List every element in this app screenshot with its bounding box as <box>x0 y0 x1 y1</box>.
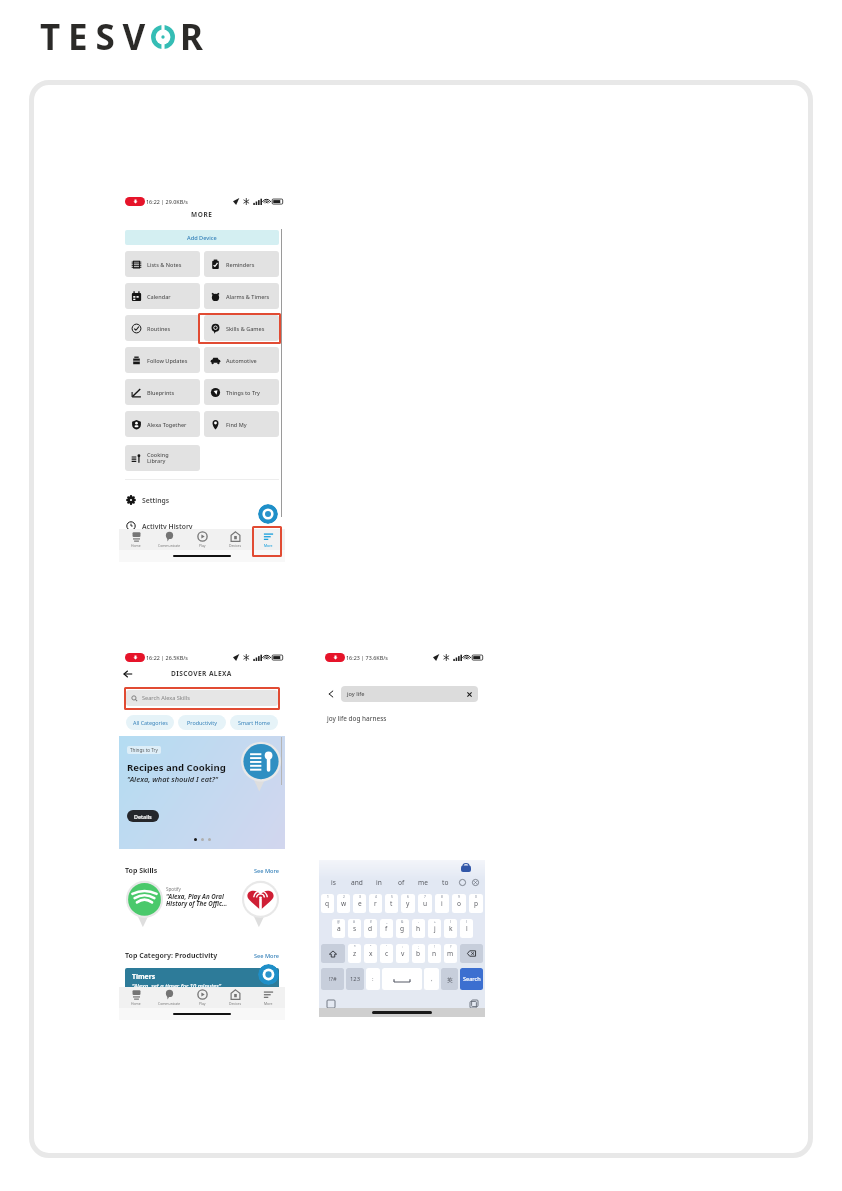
button[interactable]: Things to Try <box>204 379 279 405</box>
button[interactable]: Back <box>119 666 137 681</box>
button[interactable]: Blueprints <box>125 379 200 405</box>
button[interactable]: y <box>401 894 415 913</box>
staticText: More <box>264 1001 273 1006</box>
button[interactable]: v <box>396 944 409 963</box>
button[interactable]: a <box>332 919 345 938</box>
button[interactable]: Skills & Games <box>204 315 279 341</box>
button[interactable]: m <box>444 944 457 963</box>
button[interactable]: o <box>452 894 466 913</box>
button[interactable]: Timers <box>125 968 279 992</box>
button[interactable]: f <box>380 919 393 938</box>
button[interactable]: Activity History <box>119 516 285 536</box>
button[interactable]: Search Alexa Skills <box>126 690 278 706</box>
button[interactable]: : <box>366 968 380 990</box>
staticText: Follow Updates <box>147 357 188 364</box>
button[interactable]: Space <box>382 968 422 990</box>
button[interactable]: 123 <box>346 968 364 990</box>
staticText: Lists & Notes <box>147 261 182 268</box>
button[interactable]: 英 <box>441 968 458 990</box>
button[interactable]: Find My <box>204 411 279 437</box>
button[interactable]: w <box>337 894 350 913</box>
button[interactable]: in <box>368 876 390 889</box>
button[interactable]: Automotive <box>204 347 279 373</box>
button[interactable]: e <box>353 894 366 913</box>
staticText: : <box>372 975 374 983</box>
button[interactable]: Cooking Library <box>125 445 200 471</box>
button[interactable]: Shift <box>321 944 345 963</box>
button[interactable]: Productivity <box>178 715 226 730</box>
button[interactable]: More <box>252 987 285 1008</box>
button[interactable]: of <box>390 876 412 889</box>
staticText: _ <box>386 920 388 924</box>
button[interactable]: g <box>396 919 409 938</box>
button[interactable]: t <box>385 894 398 913</box>
button[interactable]: Reminders <box>204 251 279 277</box>
button[interactable]: Details <box>127 810 159 822</box>
button[interactable]: d <box>364 919 377 938</box>
button[interactable]: Routines <box>125 315 200 341</box>
button[interactable]: n <box>428 944 441 963</box>
button[interactable]: Home <box>119 987 153 1008</box>
button[interactable]: Home <box>119 529 153 550</box>
button[interactable]: Communicate <box>153 529 186 550</box>
button[interactable]: All Categories <box>126 715 174 730</box>
staticText: Routines <box>147 325 171 332</box>
button[interactable]: Devices <box>219 529 252 550</box>
button[interactable]: Follow Updates <box>125 347 200 373</box>
button[interactable]: !?# <box>321 968 344 990</box>
button[interactable]: Close suggestions <box>469 876 482 889</box>
button[interactable]: q <box>321 894 334 913</box>
button[interactable]: is <box>322 876 345 889</box>
button[interactable]: Backspace <box>460 944 483 963</box>
button[interactable]: r <box>369 894 382 913</box>
button[interactable]: and <box>345 876 368 889</box>
staticText: See More <box>254 867 279 875</box>
staticText: joy life dog harness <box>327 714 387 723</box>
staticText: Communicate <box>158 1001 181 1006</box>
button[interactable]: Alexa <box>258 964 279 985</box>
staticText: 16:22 | 29.0KB/s <box>146 198 188 205</box>
button[interactable]: Play <box>186 987 219 1008</box>
button[interactable]: l <box>460 919 473 938</box>
button[interactable]: b <box>412 944 425 963</box>
button[interactable]: joy life <box>341 686 478 702</box>
button[interactable]: Alexa <box>258 504 278 524</box>
button[interactable]: Lists & Notes <box>125 251 200 277</box>
button[interactable]: See More <box>254 952 279 960</box>
button[interactable]: z <box>348 944 361 963</box>
button[interactable]: i <box>435 894 449 913</box>
staticText: 1 <box>327 895 329 899</box>
button[interactable]: Alarms & Timers <box>204 283 279 309</box>
button[interactable]: u <box>418 894 432 913</box>
staticText: v <box>401 949 405 958</box>
button[interactable]: c <box>380 944 393 963</box>
button[interactable]: Settings <box>119 490 285 510</box>
button[interactable]: Search <box>460 968 483 990</box>
button[interactable]: p <box>469 894 483 913</box>
button[interactable]: k <box>444 919 457 938</box>
button[interactable]: Keyboard layout <box>325 998 336 1009</box>
button[interactable]: x <box>364 944 377 963</box>
button[interactable]: Add Device <box>125 230 279 245</box>
button[interactable]: Calendar <box>125 283 200 309</box>
button[interactable]: Smart Home <box>230 715 278 730</box>
button[interactable]: Devices <box>219 987 252 1008</box>
button[interactable]: Clipboard <box>468 998 479 1009</box>
button[interactable]: See More <box>254 867 279 875</box>
button[interactable]: Play <box>186 529 219 550</box>
button[interactable]: s <box>348 919 361 938</box>
button[interactable]: to <box>434 876 456 889</box>
button[interactable]: me <box>412 876 434 889</box>
button[interactable]: More <box>252 529 285 550</box>
staticText: Add Device <box>187 234 217 242</box>
button[interactable]: Alexa Together <box>125 411 200 437</box>
button[interactable]: , <box>424 968 439 990</box>
staticText: 英 <box>447 976 453 983</box>
button[interactable]: h <box>412 919 425 938</box>
button[interactable]: Voice <box>456 876 469 889</box>
staticText: ; <box>418 945 419 949</box>
button[interactable]: j <box>428 919 441 938</box>
staticText: Things to Try <box>226 389 260 396</box>
button[interactable]: Back <box>324 687 338 701</box>
button[interactable]: Communicate <box>153 987 186 1008</box>
